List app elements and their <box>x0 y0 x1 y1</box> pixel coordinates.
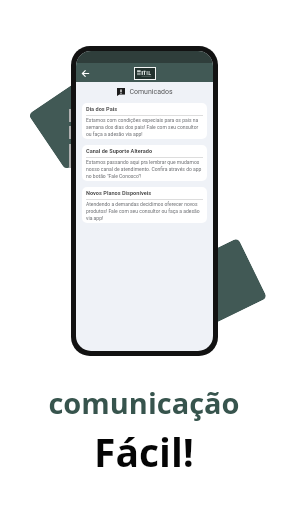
button[interactable]: Back <box>78 66 92 80</box>
button[interactable]: Canal de Suporte Alterado <box>82 145 207 181</box>
staticText: Fácil! <box>94 425 194 478</box>
staticText: Estamos passando aqui pra lembrar que mu… <box>86 159 203 179</box>
button[interactable]: Novos Planos Disponíveis <box>82 187 207 223</box>
staticText: Comunicados <box>129 88 173 96</box>
staticText: Novos Planos Disponíveis <box>86 190 152 197</box>
button[interactable]: Dia dos Pais <box>82 103 207 139</box>
staticText: Canal de Suporte Alterado <box>86 148 153 155</box>
button[interactable]: Logo <box>135 68 155 79</box>
staticText: Atendendo a demandas decidimos oferecer … <box>86 201 203 221</box>
staticText: Dia dos Pais <box>86 106 118 113</box>
staticText: comunicação <box>48 383 240 422</box>
staticText: Estamos com condições especiais para os … <box>86 117 203 137</box>
